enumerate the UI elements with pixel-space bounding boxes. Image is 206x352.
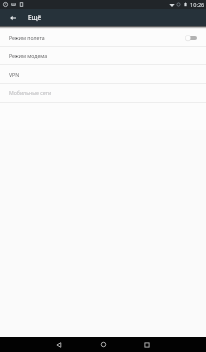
button[interactable]: Recents: [139, 337, 155, 352]
button[interactable]: Back: [51, 337, 67, 352]
staticText: 10:26: [190, 1, 205, 9]
staticText: Мобильные сети: [9, 89, 52, 96]
staticText: Режим модема: [9, 52, 48, 59]
button[interactable]: Режим полета: [0, 28, 206, 47]
button[interactable]: Home: [95, 337, 111, 352]
staticText: Режим полета: [9, 34, 45, 41]
button[interactable]: Мобильные сети: [0, 83, 206, 102]
staticText: Ещё: [28, 13, 42, 22]
button[interactable]: Режим модема: [0, 46, 206, 65]
button[interactable]: VPN: [0, 65, 206, 84]
button[interactable]: Back: [0, 9, 25, 26]
staticText: VPN: [9, 71, 20, 78]
